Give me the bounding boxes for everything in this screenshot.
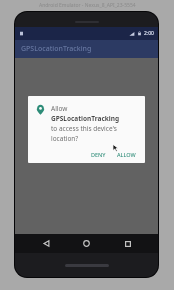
- staticText: GPSLocationTracking: [21, 44, 92, 54]
- button[interactable]: Home: [77, 234, 96, 253]
- staticText: 2:00: [144, 30, 154, 37]
- staticText: DENY: [91, 151, 106, 158]
- button[interactable]: DENY: [87, 148, 110, 161]
- staticText: location?: [51, 134, 79, 143]
- staticText: ALLOW: [117, 151, 136, 158]
- staticText: Allow: [51, 104, 68, 113]
- button[interactable]: Back: [37, 234, 56, 253]
- staticText: to access this device's: [51, 124, 117, 133]
- button[interactable]: ALLOW: [113, 148, 140, 161]
- button[interactable]: Recent apps: [118, 234, 137, 253]
- staticText: GPSLocationTracking: [51, 114, 120, 123]
- staticText: Android Emulator - Nexus_8_API_23-5554: [39, 2, 136, 9]
